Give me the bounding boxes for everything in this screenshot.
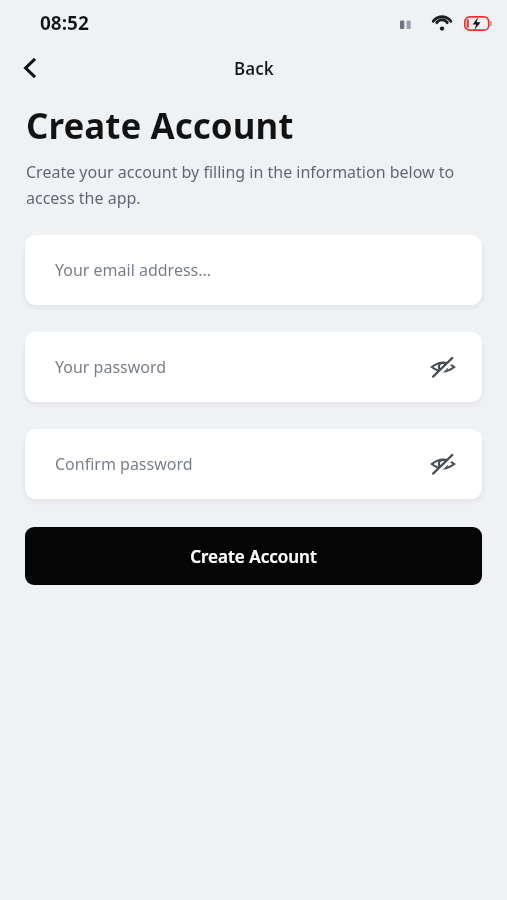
button[interactable]: Your password (25, 332, 482, 402)
button[interactable]: Your email address... (25, 235, 482, 305)
staticText: Back (234, 57, 274, 80)
staticText: Create Account (26, 102, 294, 150)
button[interactable]: Back (10, 48, 50, 88)
button[interactable]: Create Account (25, 527, 482, 585)
staticText: Create your account by filling in the in… (26, 161, 479, 209)
staticText: Your email address... (55, 259, 212, 281)
button[interactable]: Confirm password (25, 429, 482, 499)
staticText: Create Account (190, 545, 317, 568)
staticText: Your password (55, 356, 167, 378)
button[interactable]: Show password (426, 350, 460, 384)
staticText: Confirm password (55, 453, 193, 475)
staticText: 08:52 (40, 10, 89, 36)
button[interactable]: Show password (426, 447, 460, 481)
